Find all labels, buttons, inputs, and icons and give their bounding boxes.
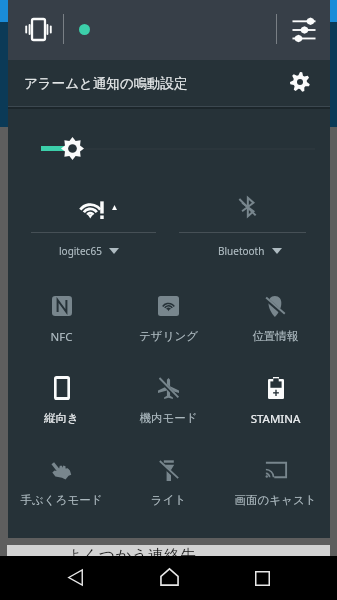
staticText: アラームと通知の鳴動設定 [24, 75, 188, 92]
button[interactable]: STAMINA [222, 352, 329, 434]
staticText: NFC [8, 329, 115, 345]
button[interactable]: Bluetooth [169, 186, 330, 264]
staticText: テザリング [115, 329, 222, 343]
staticText: よくつかう連絡先 [66, 546, 196, 557]
button[interactable]: NFC [8, 270, 115, 352]
button[interactable] [8, 128, 330, 170]
button[interactable]: User profile [64, 9, 104, 49]
button[interactable]: Ring mode: vibrate [20, 11, 57, 48]
button[interactable]: ライト [115, 434, 222, 516]
button[interactable]: 手ぶくろモード [8, 434, 115, 516]
button[interactable]: Edit quick settings [285, 11, 322, 48]
button[interactable]: Back [46, 556, 104, 600]
button[interactable]: Recent apps [233, 556, 291, 600]
button[interactable]: アラームと通知の鳴動設定 [8, 60, 330, 106]
staticText: ライト [115, 493, 222, 507]
staticText: STAMINA [222, 411, 329, 427]
button[interactable]: logitec65 [8, 186, 169, 264]
staticText: 縦向き [8, 411, 115, 425]
staticText: 画面のキャスト [222, 493, 329, 507]
button[interactable]: 縦向き [8, 352, 115, 434]
button[interactable]: 画面のキャスト [222, 434, 329, 516]
button[interactable]: Home [140, 556, 198, 600]
staticText: 位置情報 [222, 329, 329, 343]
staticText: 機内モード [115, 411, 222, 425]
staticText: Bluetooth [218, 244, 265, 258]
button[interactable]: 位置情報 [222, 270, 329, 352]
button[interactable]: 機内モード [115, 352, 222, 434]
staticText: logitec65 [59, 244, 102, 258]
staticText: 手ぶくろモード [8, 493, 115, 507]
button[interactable]: テザリング [115, 270, 222, 352]
button[interactable]: よくつかう連絡先 [7, 545, 330, 556]
